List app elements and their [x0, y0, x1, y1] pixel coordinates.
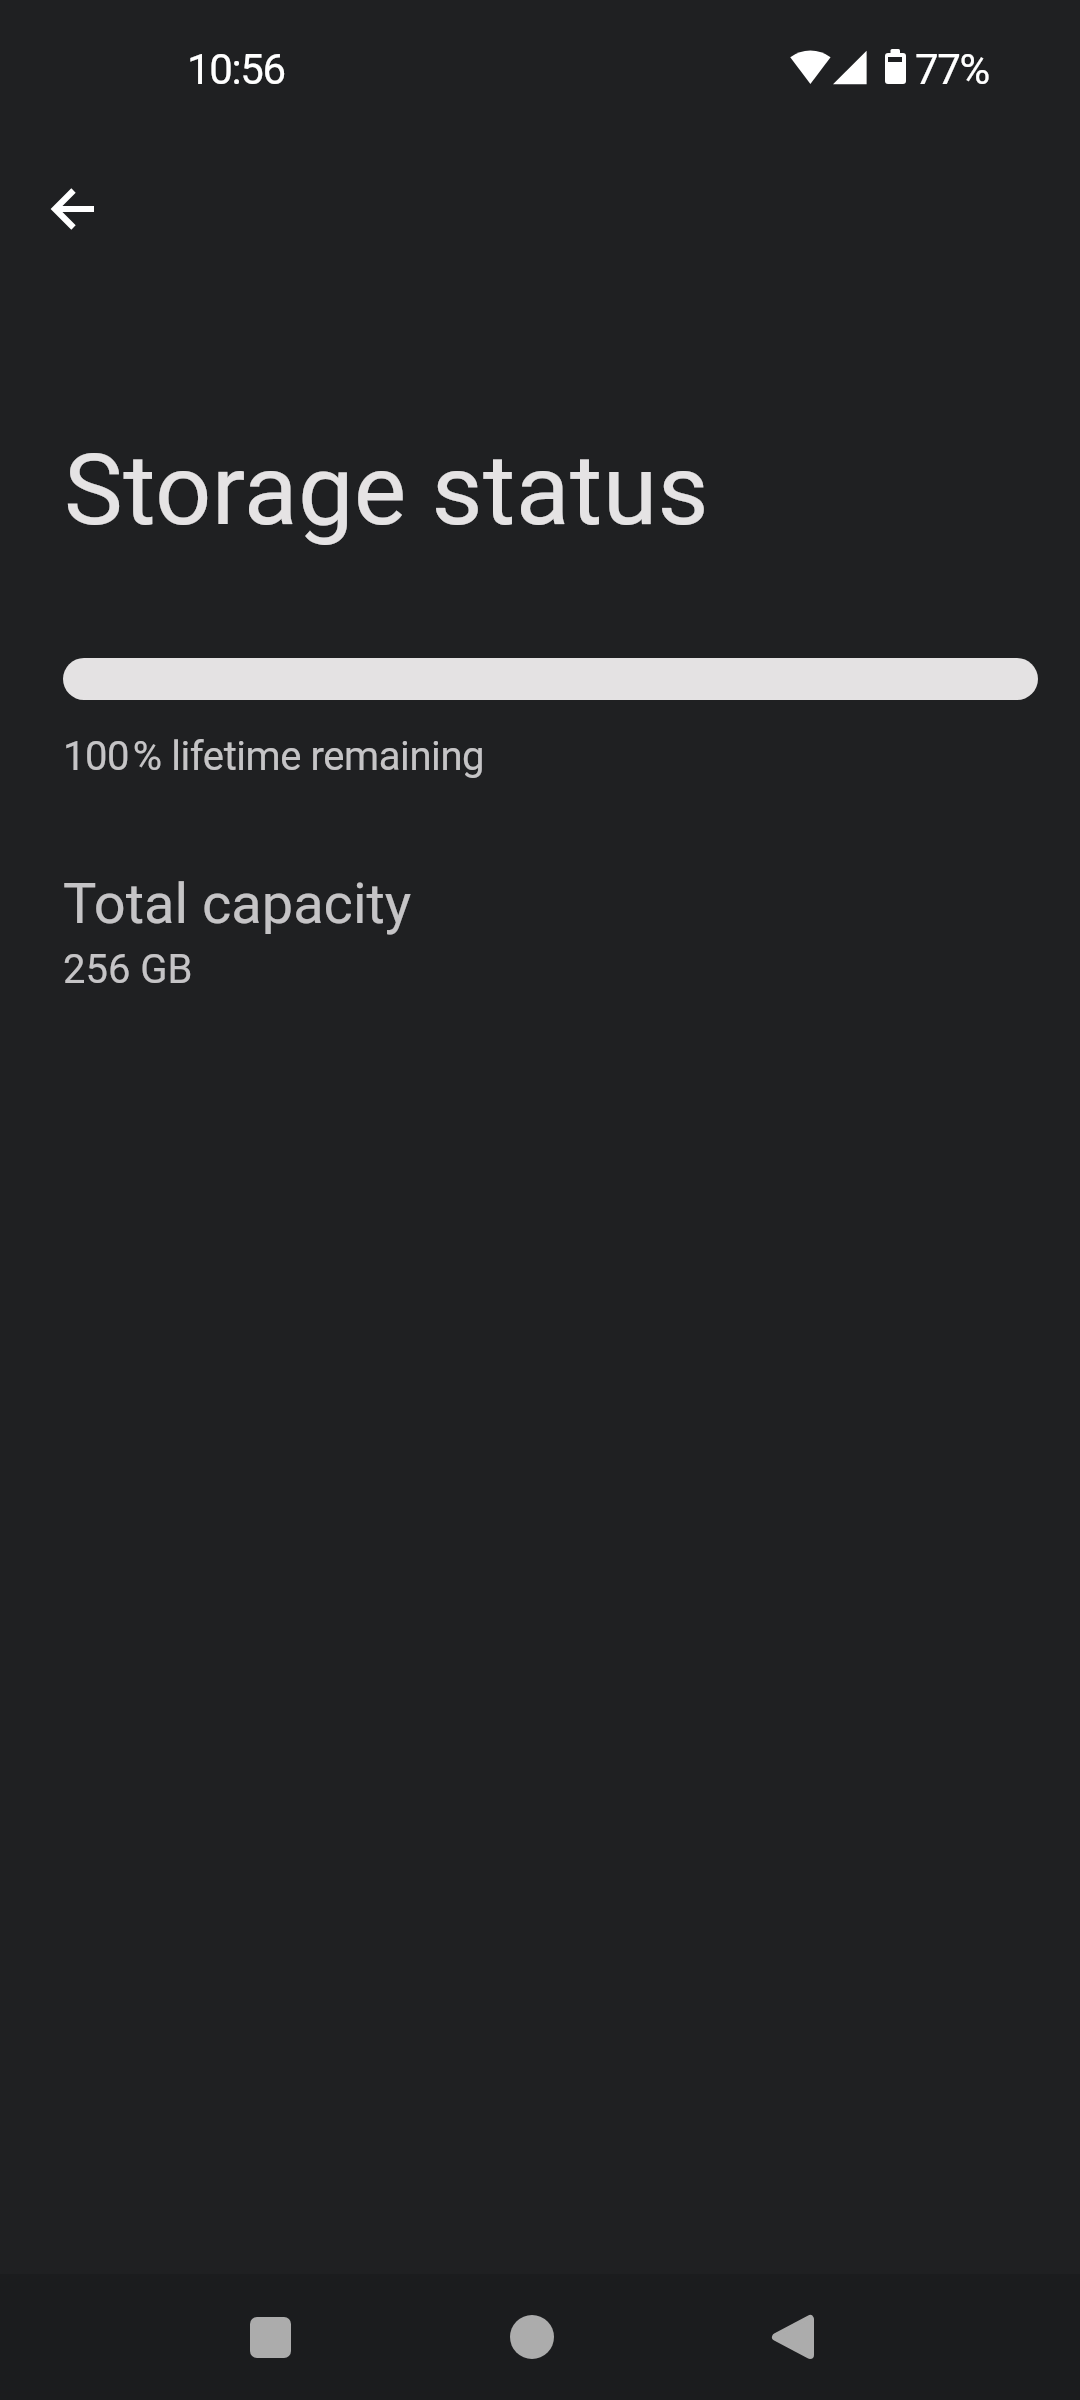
staticText: 77%: [915, 45, 989, 94]
staticText: 10:56: [187, 45, 285, 94]
staticText: Storage status: [64, 432, 710, 548]
button[interactable]: Home: [472, 2274, 592, 2400]
staticText: 256 GB: [63, 946, 193, 993]
button[interactable]: Recent apps: [210, 2274, 330, 2400]
button[interactable]: Navigate up: [28, 161, 124, 257]
staticText: Total capacity: [63, 871, 412, 937]
staticText: 100 % lifetime remaining: [63, 733, 485, 780]
button[interactable]: Back: [733, 2274, 853, 2400]
